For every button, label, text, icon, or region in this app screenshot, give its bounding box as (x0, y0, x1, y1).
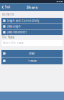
staticText: File Name (2, 36, 15, 39)
staticText: Elements (2, 13, 14, 16)
staticText: Email (29, 52, 35, 55)
staticText: Preview (27, 59, 36, 62)
button[interactable]: Preview (1, 57, 63, 64)
staticText: Data Transmitter (7, 30, 27, 34)
staticText: Share (26, 4, 37, 10)
staticText: Data Graph (7, 25, 21, 28)
staticText: Graph and Connectivity (7, 19, 39, 22)
button[interactable]: Back (0, 3, 11, 11)
staticText: Enter file name (3, 41, 24, 45)
button[interactable]: Graph and Connectivity (1, 18, 63, 23)
staticText: Back (5, 5, 10, 9)
button[interactable]: Data Transmitter (1, 29, 63, 35)
button[interactable]: Email (1, 50, 63, 57)
button[interactable]: Data Graph (1, 24, 63, 29)
